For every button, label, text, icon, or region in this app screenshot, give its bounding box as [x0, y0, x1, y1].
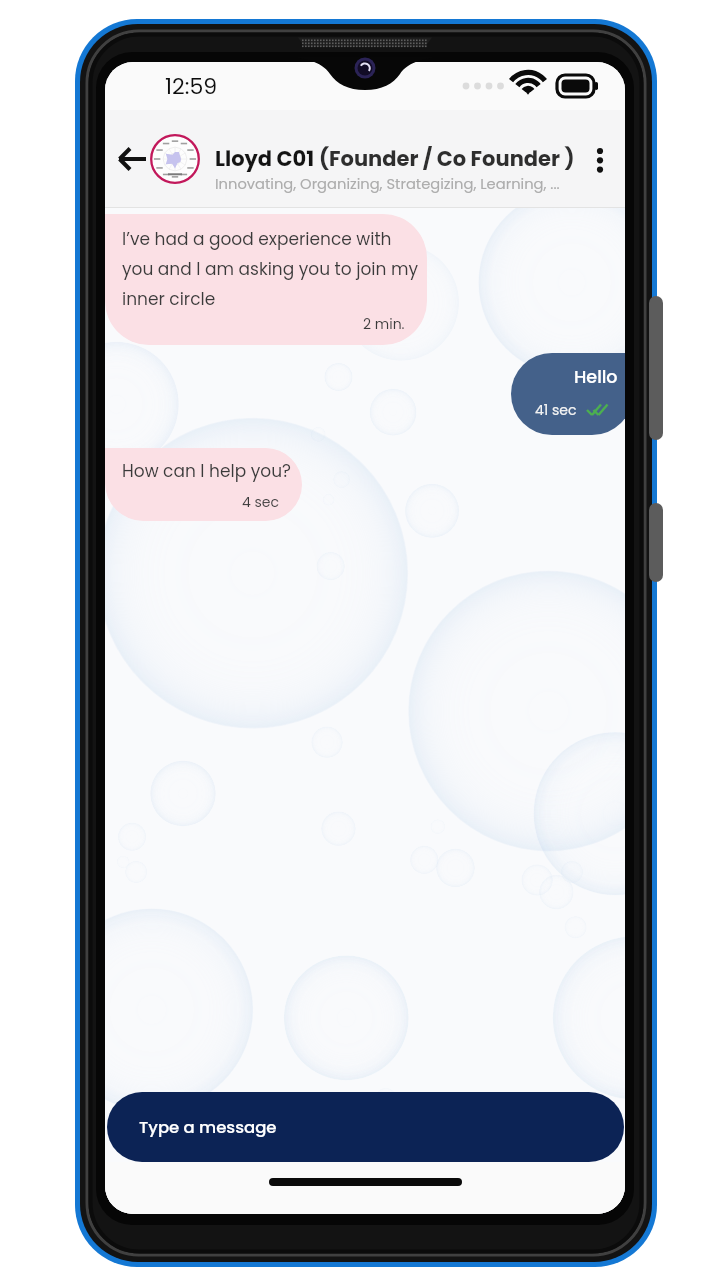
- button[interactable]: Hello: [511, 353, 625, 435]
- button[interactable]: I’ve had a good experience with you and …: [105, 214, 427, 345]
- staticText: 2 min.: [363, 314, 405, 334]
- staticText: Lloyd C01: [215, 144, 319, 173]
- button[interactable]: Back: [107, 134, 157, 184]
- staticText: Hello: [574, 365, 618, 390]
- staticText: Type a message: [139, 1116, 277, 1139]
- staticText: 12:59: [165, 71, 218, 102]
- staticText: Innovating, Organizing, Strategizing, Le…: [215, 174, 560, 195]
- button[interactable]: How can I help you?: [105, 448, 302, 521]
- staticText: I’ve had a good experience with you and …: [122, 227, 419, 311]
- staticText: How can I help you?: [122, 459, 291, 483]
- staticText: (Founder / Co Founder ): [319, 144, 575, 173]
- staticText: 4 sec: [242, 492, 280, 512]
- button[interactable]: Type a message: [107, 1092, 624, 1162]
- button[interactable]: More options: [577, 137, 623, 183]
- staticText: 41 sec: [535, 400, 577, 420]
